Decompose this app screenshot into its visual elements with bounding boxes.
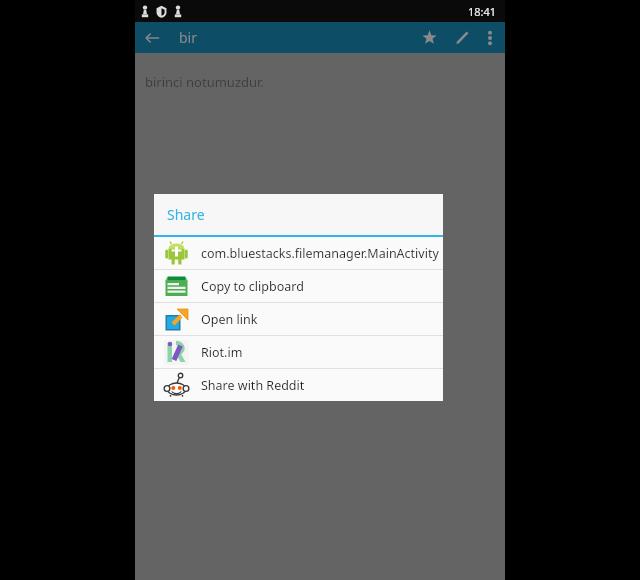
staticText: bir (179, 28, 413, 47)
button[interactable]: More options (479, 22, 501, 53)
staticText: birinci notumuzdur. (145, 73, 264, 91)
button[interactable]: Back (135, 22, 169, 53)
button[interactable]: com.bluestacks.filemanager.MainActivity (154, 237, 443, 269)
button[interactable]: Favorite (413, 22, 446, 53)
button[interactable]: Open link (154, 303, 443, 335)
button[interactable]: Share with Reddit (154, 369, 443, 401)
staticText: Copy to clipboard (201, 278, 304, 295)
button[interactable]: Riot.im (154, 336, 443, 368)
staticText: Riot.im (201, 344, 243, 361)
button[interactable]: Copy to clipboard (154, 270, 443, 302)
staticText: Share with Reddit (201, 377, 305, 394)
staticText: Open link (201, 311, 258, 328)
button[interactable]: Edit (446, 22, 479, 53)
staticText: 18:41 (468, 4, 497, 19)
staticText: com.bluestacks.filemanager.MainActivity (201, 245, 439, 262)
staticText: Share (167, 205, 205, 224)
